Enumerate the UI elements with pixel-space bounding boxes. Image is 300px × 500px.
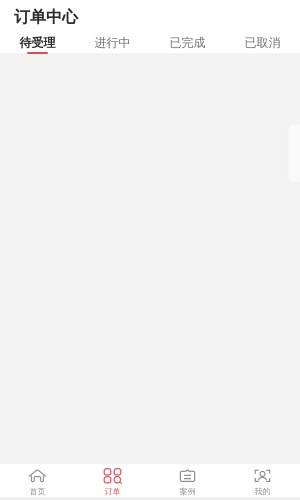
staticText: 案例 (179, 487, 195, 496)
staticText: 订单中心 (14, 7, 78, 27)
button[interactable]: 已取消 (225, 35, 300, 54)
staticText: 我的 (254, 487, 270, 496)
button[interactable]: 我的 (225, 459, 300, 500)
staticText: 进行中 (94, 35, 130, 50)
button[interactable]: 待受理 (0, 35, 75, 54)
staticText: 已取消 (244, 35, 280, 50)
staticText: 待受理 (19, 35, 55, 50)
button[interactable]: 案例 (150, 459, 225, 500)
button[interactable]: 订单 (75, 459, 150, 500)
button[interactable]: 已完成 (150, 35, 225, 54)
button[interactable]: 进行中 (75, 35, 150, 54)
staticText: 已完成 (169, 35, 205, 50)
staticText: 订单 (104, 487, 120, 496)
button[interactable]: 首页 (0, 459, 75, 500)
staticText: 首页 (29, 487, 45, 496)
